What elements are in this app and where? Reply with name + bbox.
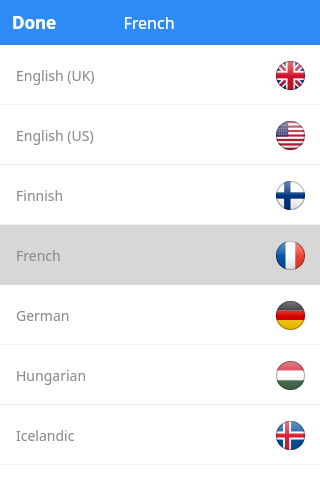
- staticText: Hungarian: [16, 366, 87, 385]
- button[interactable]: English (US): [0, 105, 320, 165]
- button[interactable]: Done: [0, 3, 69, 42]
- staticText: French: [123, 12, 175, 34]
- staticText: Icelandic: [16, 426, 75, 445]
- button[interactable]: English (UK): [0, 45, 320, 105]
- button[interactable]: Icelandic: [0, 405, 320, 465]
- staticText: French: [16, 246, 61, 265]
- staticText: English (UK): [16, 66, 95, 85]
- staticText: English (US): [16, 126, 94, 145]
- staticText: Done: [12, 11, 57, 34]
- button[interactable]: German: [0, 285, 320, 345]
- button[interactable]: Finnish: [0, 165, 320, 225]
- staticText: German: [16, 306, 70, 325]
- staticText: Finnish: [16, 186, 64, 205]
- button[interactable]: French: [0, 225, 320, 285]
- button[interactable]: Hungarian: [0, 345, 320, 405]
